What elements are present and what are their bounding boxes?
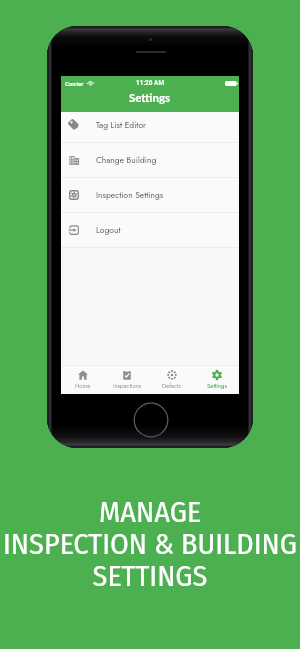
- button[interactable]: Home: [61, 366, 105, 394]
- button[interactable]: Inspection Settings: [61, 178, 239, 212]
- staticText: Change Building: [96, 154, 157, 166]
- staticText: Logout: [96, 224, 121, 236]
- staticText: Inspection Settings: [96, 189, 164, 201]
- button[interactable]: Defects: [149, 366, 194, 394]
- button[interactable]: Inspections: [105, 366, 149, 394]
- button[interactable]: Change Building: [61, 143, 239, 177]
- staticText: Home: [75, 382, 91, 391]
- staticText: Defects: [162, 382, 181, 391]
- staticText: Carrier: [65, 80, 84, 87]
- staticText: 11:26 AM: [136, 79, 165, 87]
- button[interactable]: Settings: [194, 366, 239, 394]
- staticText: Tag List Editor: [96, 119, 146, 131]
- staticText: Settings: [207, 382, 227, 391]
- button[interactable]: Tag List Editor: [61, 108, 239, 142]
- staticText: Settings: [129, 91, 171, 105]
- button[interactable]: Logout: [61, 213, 239, 247]
- staticText: Inspections: [113, 382, 142, 391]
- staticText: MANAGE INSPECTION & BUILDING SETTINGS: [0, 494, 300, 594]
